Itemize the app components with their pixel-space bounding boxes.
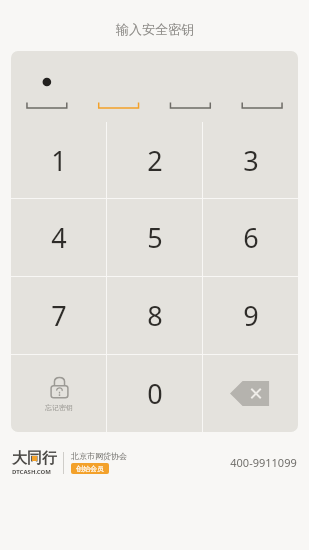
staticText: 8: [147, 297, 163, 334]
button[interactable]: 5: [107, 199, 202, 276]
staticText: 9: [243, 297, 259, 334]
staticText: 北京市网贷协会: [71, 451, 127, 461]
staticText: 6: [243, 219, 259, 256]
button[interactable]: 忘记密钥: [11, 355, 106, 432]
staticText: DTCASH.COM: [12, 468, 51, 476]
button[interactable]: 6: [203, 199, 298, 276]
staticText: 3: [243, 142, 259, 179]
staticText: 行: [42, 449, 57, 468]
button[interactable]: 0: [107, 355, 202, 432]
staticText: 2: [147, 142, 163, 179]
staticText: 同: [27, 449, 42, 468]
button[interactable]: 7: [11, 277, 106, 354]
button[interactable]: 1: [11, 122, 106, 198]
staticText: 输入安全密钥: [116, 21, 194, 37]
staticText: 大: [12, 449, 27, 468]
staticText: 1: [51, 142, 67, 179]
button[interactable]: 8: [107, 277, 202, 354]
button[interactable]: Delete: [203, 355, 298, 432]
button[interactable]: 3: [203, 122, 298, 198]
button[interactable]: 2: [107, 122, 202, 198]
staticText: 忘记密钥: [45, 403, 73, 412]
staticText: 400-9911099: [230, 455, 297, 470]
staticText: 7: [51, 297, 67, 334]
staticText: 0: [147, 375, 163, 412]
staticText: 5: [147, 219, 163, 256]
button[interactable]: 9: [203, 277, 298, 354]
staticText: 创始会员: [76, 464, 104, 473]
button[interactable]: 4: [11, 199, 106, 276]
staticText: 4: [51, 219, 67, 256]
